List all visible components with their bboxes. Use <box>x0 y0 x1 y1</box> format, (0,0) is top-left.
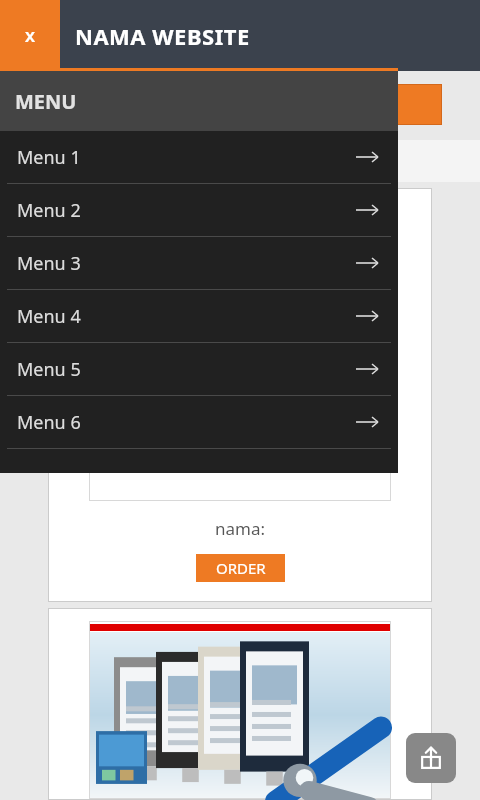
staticText: NAMA WEBSITE <box>75 21 250 51</box>
staticText: Menu 1 <box>17 145 81 170</box>
button[interactable]: nama: <box>49 189 431 601</box>
button[interactable]: Menu 5 <box>0 343 398 395</box>
button[interactable] <box>49 609 431 799</box>
button[interactable]: Menu 3 <box>0 237 398 289</box>
staticText: Menu 6 <box>17 410 81 435</box>
button[interactable]: Menu 1 <box>0 131 398 183</box>
button[interactable]: Menu 4 <box>0 290 398 342</box>
staticText: X <box>25 26 36 46</box>
staticText: Menu 4 <box>17 304 81 329</box>
staticText: ORDER <box>216 558 266 578</box>
button[interactable]: ORDER <box>196 554 285 582</box>
staticText: nama: <box>215 517 266 540</box>
button[interactable]: Share <box>406 733 456 783</box>
staticText: MENU <box>15 88 77 115</box>
staticText: Menu 2 <box>17 198 81 223</box>
button[interactable]: Menu 6 <box>0 396 398 448</box>
button[interactable]: Close menu <box>0 0 60 71</box>
staticText: Menu 3 <box>17 251 81 276</box>
button[interactable]: Menu 2 <box>0 184 398 236</box>
staticText: Menu 5 <box>17 357 81 382</box>
